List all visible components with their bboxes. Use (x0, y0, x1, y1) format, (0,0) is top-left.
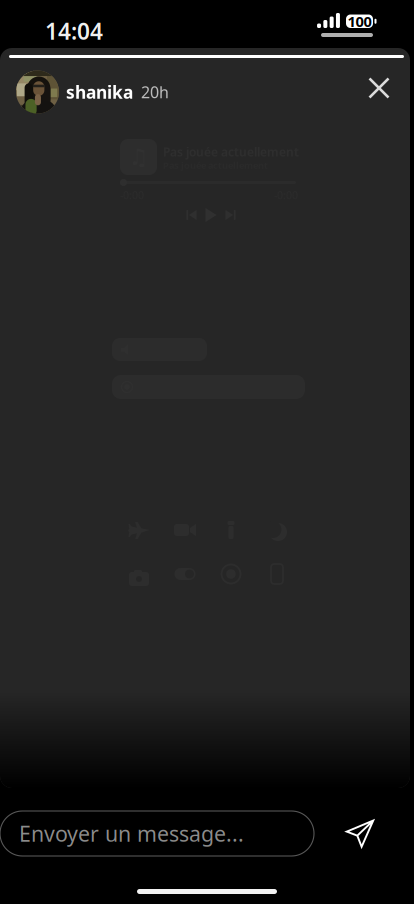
button[interactable]: Envoyer un message... (0, 811, 314, 856)
staticText: 14:04 (45, 16, 103, 46)
staticText: Envoyer un message... (19, 819, 244, 848)
button[interactable]: Send message (338, 811, 382, 855)
staticText: 20h (141, 81, 169, 103)
staticText: 100 (347, 11, 371, 31)
button[interactable]: Close story (355, 64, 403, 112)
staticText: shanika (66, 80, 133, 103)
